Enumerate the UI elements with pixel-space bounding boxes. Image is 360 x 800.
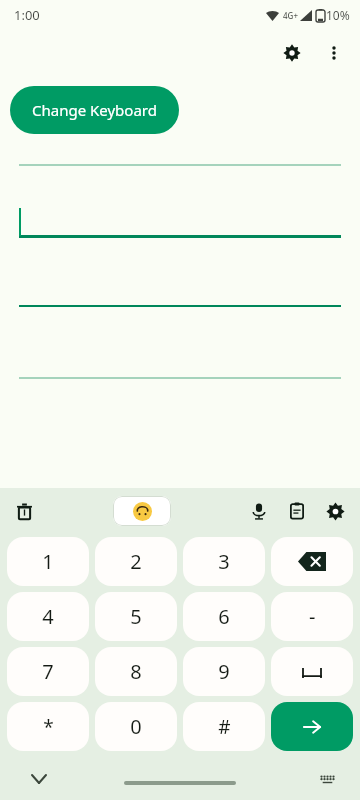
button[interactable]: 3	[183, 537, 265, 586]
button[interactable]: Settings	[270, 31, 314, 75]
button[interactable]: Change Keyboard	[10, 86, 179, 134]
button[interactable]: Backspace	[271, 537, 353, 586]
staticText: 8	[130, 658, 142, 685]
button[interactable]: Space	[271, 647, 353, 696]
staticText: 1:00	[14, 6, 40, 24]
staticText: 3	[218, 548, 230, 575]
button[interactable]: Enter	[271, 702, 353, 751]
button[interactable]: -	[271, 592, 353, 641]
button[interactable]: Delete	[8, 495, 40, 527]
staticText: 9	[218, 658, 230, 685]
staticText: #	[218, 714, 231, 740]
button[interactable]: 6	[183, 592, 265, 641]
button[interactable]: Clipboard	[280, 494, 314, 528]
button[interactable]: Keyboard settings	[318, 494, 352, 528]
button[interactable]: 7	[7, 647, 89, 696]
staticText: *	[43, 714, 54, 740]
button[interactable]: 1	[7, 537, 89, 586]
button[interactable]: Emoji	[113, 496, 171, 526]
button[interactable]: #	[183, 702, 265, 751]
button[interactable]: 0	[95, 702, 177, 751]
button[interactable]: 8	[95, 647, 177, 696]
staticText: 2	[130, 548, 142, 575]
staticText: 5	[130, 603, 142, 630]
staticText: 4G+	[283, 10, 298, 21]
staticText: 7	[42, 658, 54, 685]
button[interactable]: 4	[7, 592, 89, 641]
button[interactable]: *	[7, 702, 89, 751]
button[interactable]: Voice input	[242, 494, 276, 528]
staticText: Change Keyboard	[32, 100, 157, 120]
staticText: 10%	[326, 7, 350, 23]
staticText: 1	[42, 548, 54, 575]
button[interactable]: Switch keyboard	[312, 764, 342, 794]
staticText: 0	[130, 713, 142, 740]
button[interactable]: Hide keyboard	[24, 764, 54, 794]
button[interactable]: 9	[183, 647, 265, 696]
button[interactable]: 2	[95, 537, 177, 586]
staticText: 4	[42, 603, 54, 630]
staticText: -	[309, 603, 316, 630]
staticText: 6	[218, 603, 230, 630]
button[interactable]: 5	[95, 592, 177, 641]
button[interactable]: More options	[314, 33, 354, 73]
